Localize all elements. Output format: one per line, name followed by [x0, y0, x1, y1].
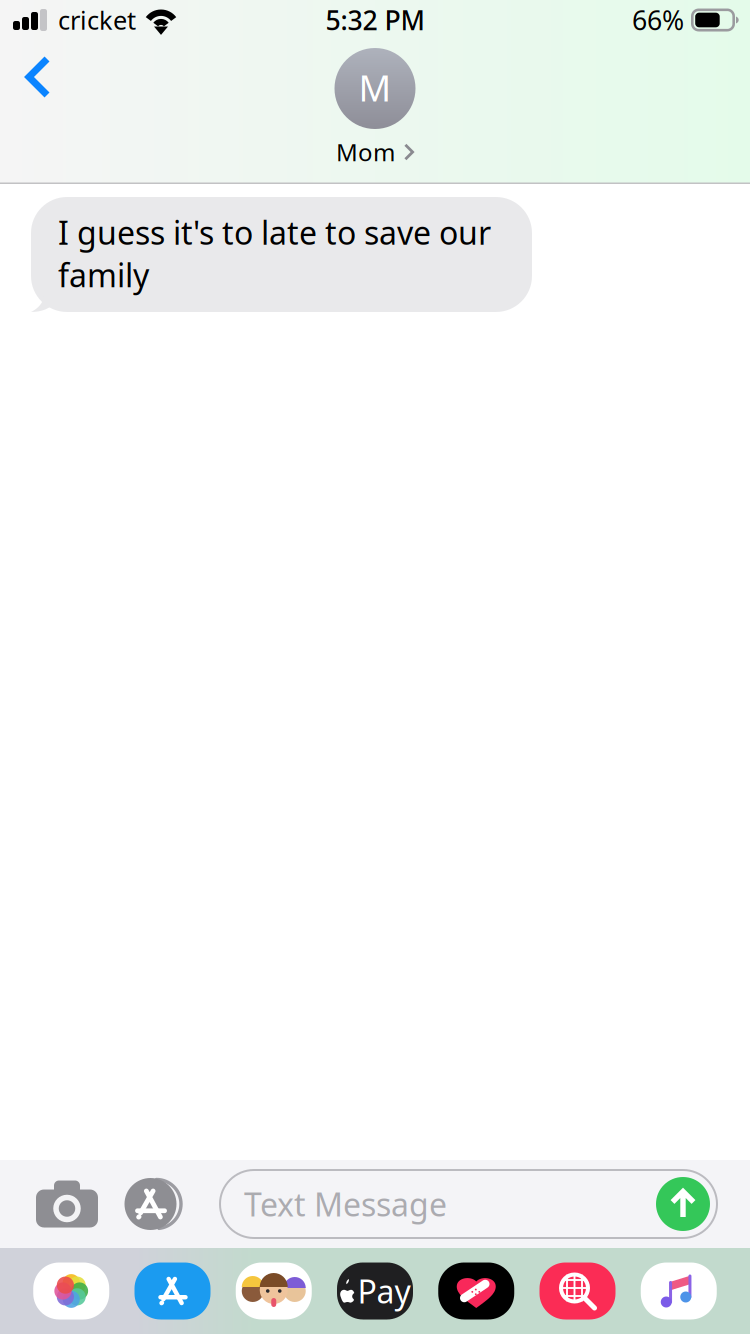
button[interactable]: Back — [0, 40, 76, 118]
staticText: Pay — [357, 1270, 410, 1312]
button[interactable]: App Store — [112, 1160, 202, 1248]
staticText: 5:32 PM — [325, 2, 424, 38]
button[interactable]: Camera — [0, 1160, 112, 1247]
button[interactable]: App Store — [134, 1262, 210, 1319]
staticText: I guess it's to late to save our family — [58, 211, 491, 296]
button[interactable]: Send — [656, 1177, 717, 1231]
staticText: Text Message — [244, 1183, 447, 1225]
button[interactable]: Music — [641, 1262, 717, 1319]
staticText: M — [358, 64, 391, 111]
staticText: Mom — [336, 136, 395, 168]
button[interactable]: Google — [539, 1262, 615, 1319]
button[interactable]: Mom, contact details — [334, 48, 415, 168]
button[interactable]: Photos — [33, 1262, 109, 1319]
staticText: 66% — [632, 2, 684, 38]
button[interactable]: Apple Pay — [337, 1262, 413, 1319]
staticText: cricket — [58, 3, 136, 37]
button[interactable]: Fitness — [438, 1262, 514, 1319]
button[interactable]: Memoji stickers — [236, 1262, 312, 1319]
